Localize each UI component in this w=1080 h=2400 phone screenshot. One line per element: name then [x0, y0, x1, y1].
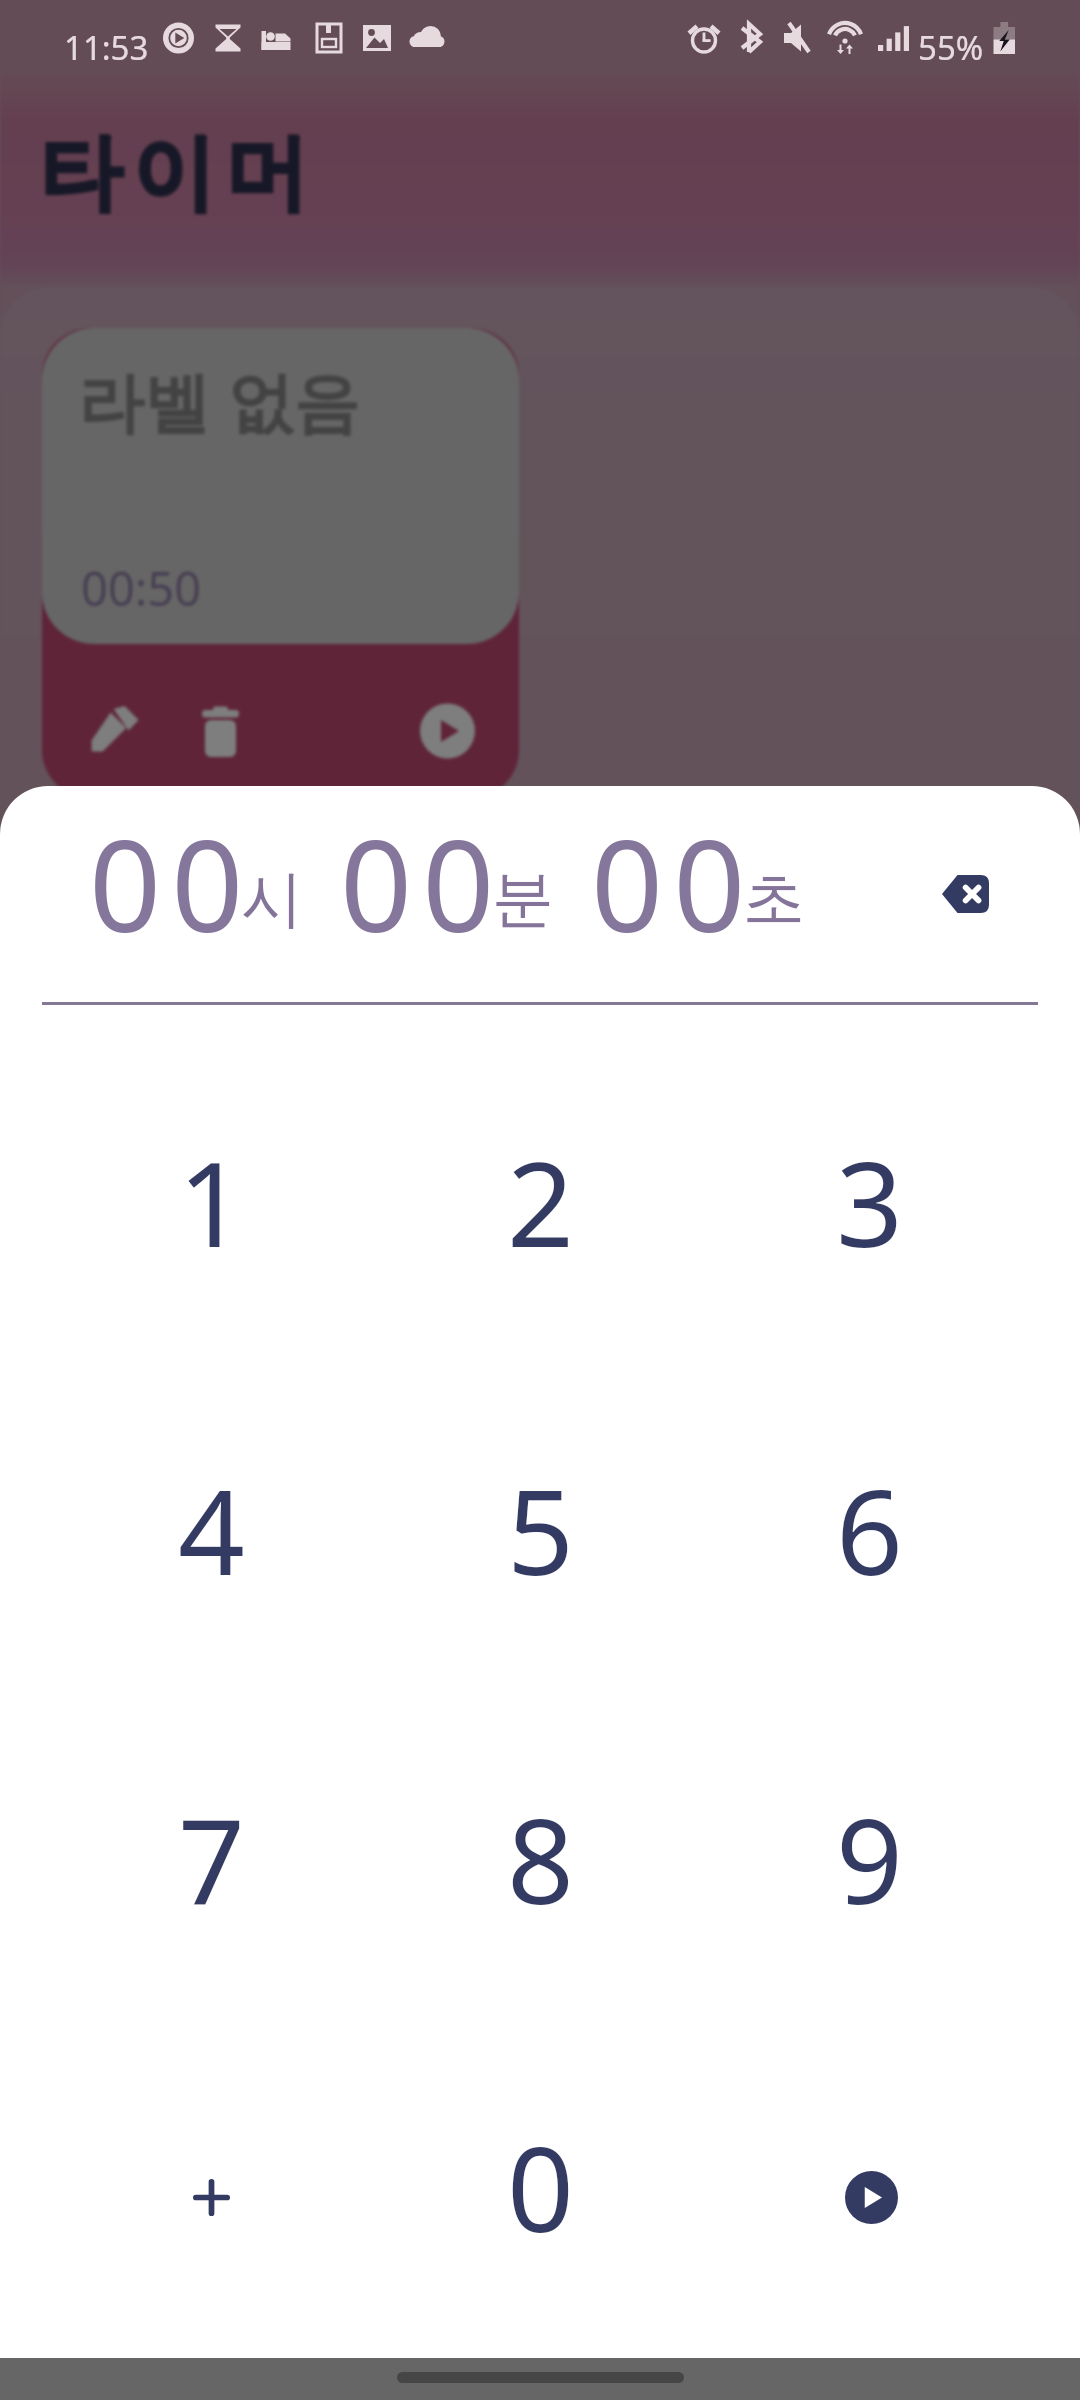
button[interactable]: 7 [46, 1694, 376, 2023]
button[interactable]: Add one minute [46, 2022, 376, 2351]
staticText: 라벨 없음 [78, 355, 360, 445]
staticText: 7 [178, 1779, 245, 1938]
staticText: 55% [918, 25, 984, 70]
button[interactable]: 9 [705, 1694, 1034, 2023]
staticText: 시 [241, 860, 303, 938]
button[interactable]: 4 [46, 1365, 376, 1694]
button[interactable]: Start timer [705, 2022, 1034, 2351]
button[interactable]: 6 [705, 1365, 1034, 1694]
staticText: 8 [507, 1779, 574, 1938]
staticText: 11:53 [64, 25, 149, 70]
staticText: 3 [836, 1122, 903, 1281]
staticText: 5 [507, 1450, 574, 1609]
staticText: 00 [591, 797, 756, 969]
staticText: 4 [178, 1450, 245, 1609]
button[interactable]: 1 [46, 1037, 376, 1366]
staticText: 타이머 [39, 121, 318, 226]
staticText: 1 [178, 1122, 245, 1281]
button[interactable]: 2 [376, 1037, 705, 1366]
staticText: 초 [743, 860, 805, 938]
staticText: 00 [340, 797, 505, 969]
staticText: 9 [836, 1779, 903, 1938]
staticText: 6 [836, 1450, 903, 1609]
staticText: 분 [492, 860, 554, 938]
staticText: 00 [89, 797, 254, 969]
button[interactable]: 5 [376, 1365, 705, 1694]
staticText: 2 [507, 1122, 574, 1281]
button[interactable]: 3 [705, 1037, 1034, 1366]
staticText: 00:50 [81, 556, 202, 620]
button[interactable]: 8 [376, 1694, 705, 2023]
button[interactable]: Backspace [942, 875, 989, 913]
staticText: 0 [507, 2107, 574, 2266]
button[interactable]: 0 [376, 2022, 705, 2351]
